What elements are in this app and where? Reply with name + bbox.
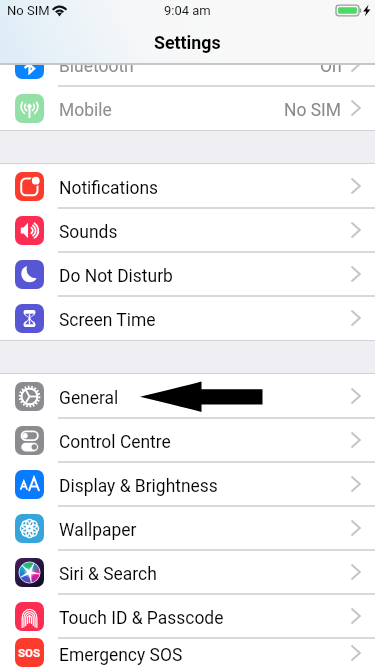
staticText: General — [59, 388, 119, 408]
staticText: Screen Time — [59, 310, 156, 330]
other: Wi-Fi — [51, 4, 68, 17]
staticText: Display & Brightness — [59, 476, 218, 496]
staticText: 9:04 am — [164, 3, 211, 18]
button[interactable]: Touch ID & Passcode — [0, 594, 375, 638]
button[interactable]: Display & Brightness — [0, 462, 375, 506]
button[interactable]: Siri & Search — [0, 550, 375, 594]
button[interactable]: Sounds — [0, 208, 375, 252]
button[interactable]: General — [0, 374, 375, 418]
button[interactable]: Control Centre — [0, 418, 375, 462]
staticText: Emergency SOS — [59, 645, 183, 665]
staticText: Settings — [154, 32, 221, 53]
staticText: Bluetooth — [59, 56, 134, 76]
staticText: Control Centre — [59, 432, 171, 452]
staticText: On — [320, 56, 342, 76]
staticText: Sounds — [59, 222, 118, 242]
other: Battery charging — [336, 4, 371, 17]
staticText: Wallpaper — [59, 520, 137, 540]
button[interactable]: Do Not Disturb — [0, 252, 375, 296]
staticText: Mobile — [59, 100, 112, 120]
button[interactable]: Mobile — [0, 86, 375, 130]
staticText: Siri & Search — [59, 564, 157, 584]
button[interactable]: SOS — [0, 638, 375, 667]
staticText: Notifications — [59, 178, 159, 198]
staticText: No SIM — [284, 100, 342, 120]
button[interactable]: Wallpaper — [0, 506, 375, 550]
staticText: No SIM — [7, 3, 50, 18]
staticText: SOS — [18, 646, 41, 659]
staticText: Do Not Disturb — [59, 266, 173, 286]
button[interactable]: Notifications — [0, 164, 375, 208]
button[interactable]: Bluetooth — [0, 42, 375, 86]
button[interactable]: Screen Time — [0, 296, 375, 340]
staticText: Touch ID & Passcode — [59, 608, 224, 628]
